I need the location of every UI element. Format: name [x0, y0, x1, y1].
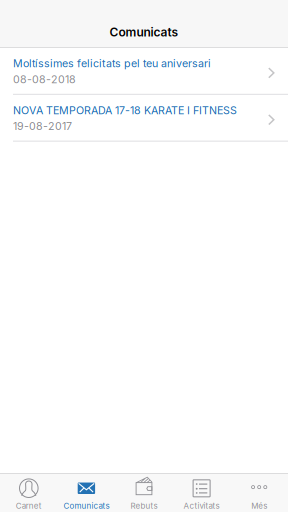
button[interactable]: NOVA TEMPORADA 17-18 KARATE I FITNESS	[0, 95, 288, 142]
staticText: Rebuts	[130, 501, 157, 511]
button[interactable]: Activitats	[173, 474, 230, 512]
staticText: Comunicats	[109, 25, 178, 39]
staticText: Comunicats	[63, 501, 109, 511]
staticText: Més	[251, 501, 267, 511]
button[interactable]: Rebuts	[115, 474, 173, 512]
button[interactable]: Més	[230, 474, 288, 512]
staticText: 08-08-2018	[13, 73, 76, 86]
staticText: Moltíssimes felicitats pel teu aniversar…	[13, 57, 211, 70]
button[interactable]: Moltíssimes felicitats pel teu aniversar…	[0, 48, 288, 95]
staticText: 19-08-2017	[13, 120, 72, 133]
button[interactable]: Comunicats	[58, 474, 115, 512]
button[interactable]: Carnet	[0, 474, 58, 512]
staticText: NOVA TEMPORADA 17-18 KARATE I FITNESS	[13, 104, 237, 117]
staticText: Carnet	[16, 501, 42, 511]
staticText: Activitats	[184, 501, 220, 511]
